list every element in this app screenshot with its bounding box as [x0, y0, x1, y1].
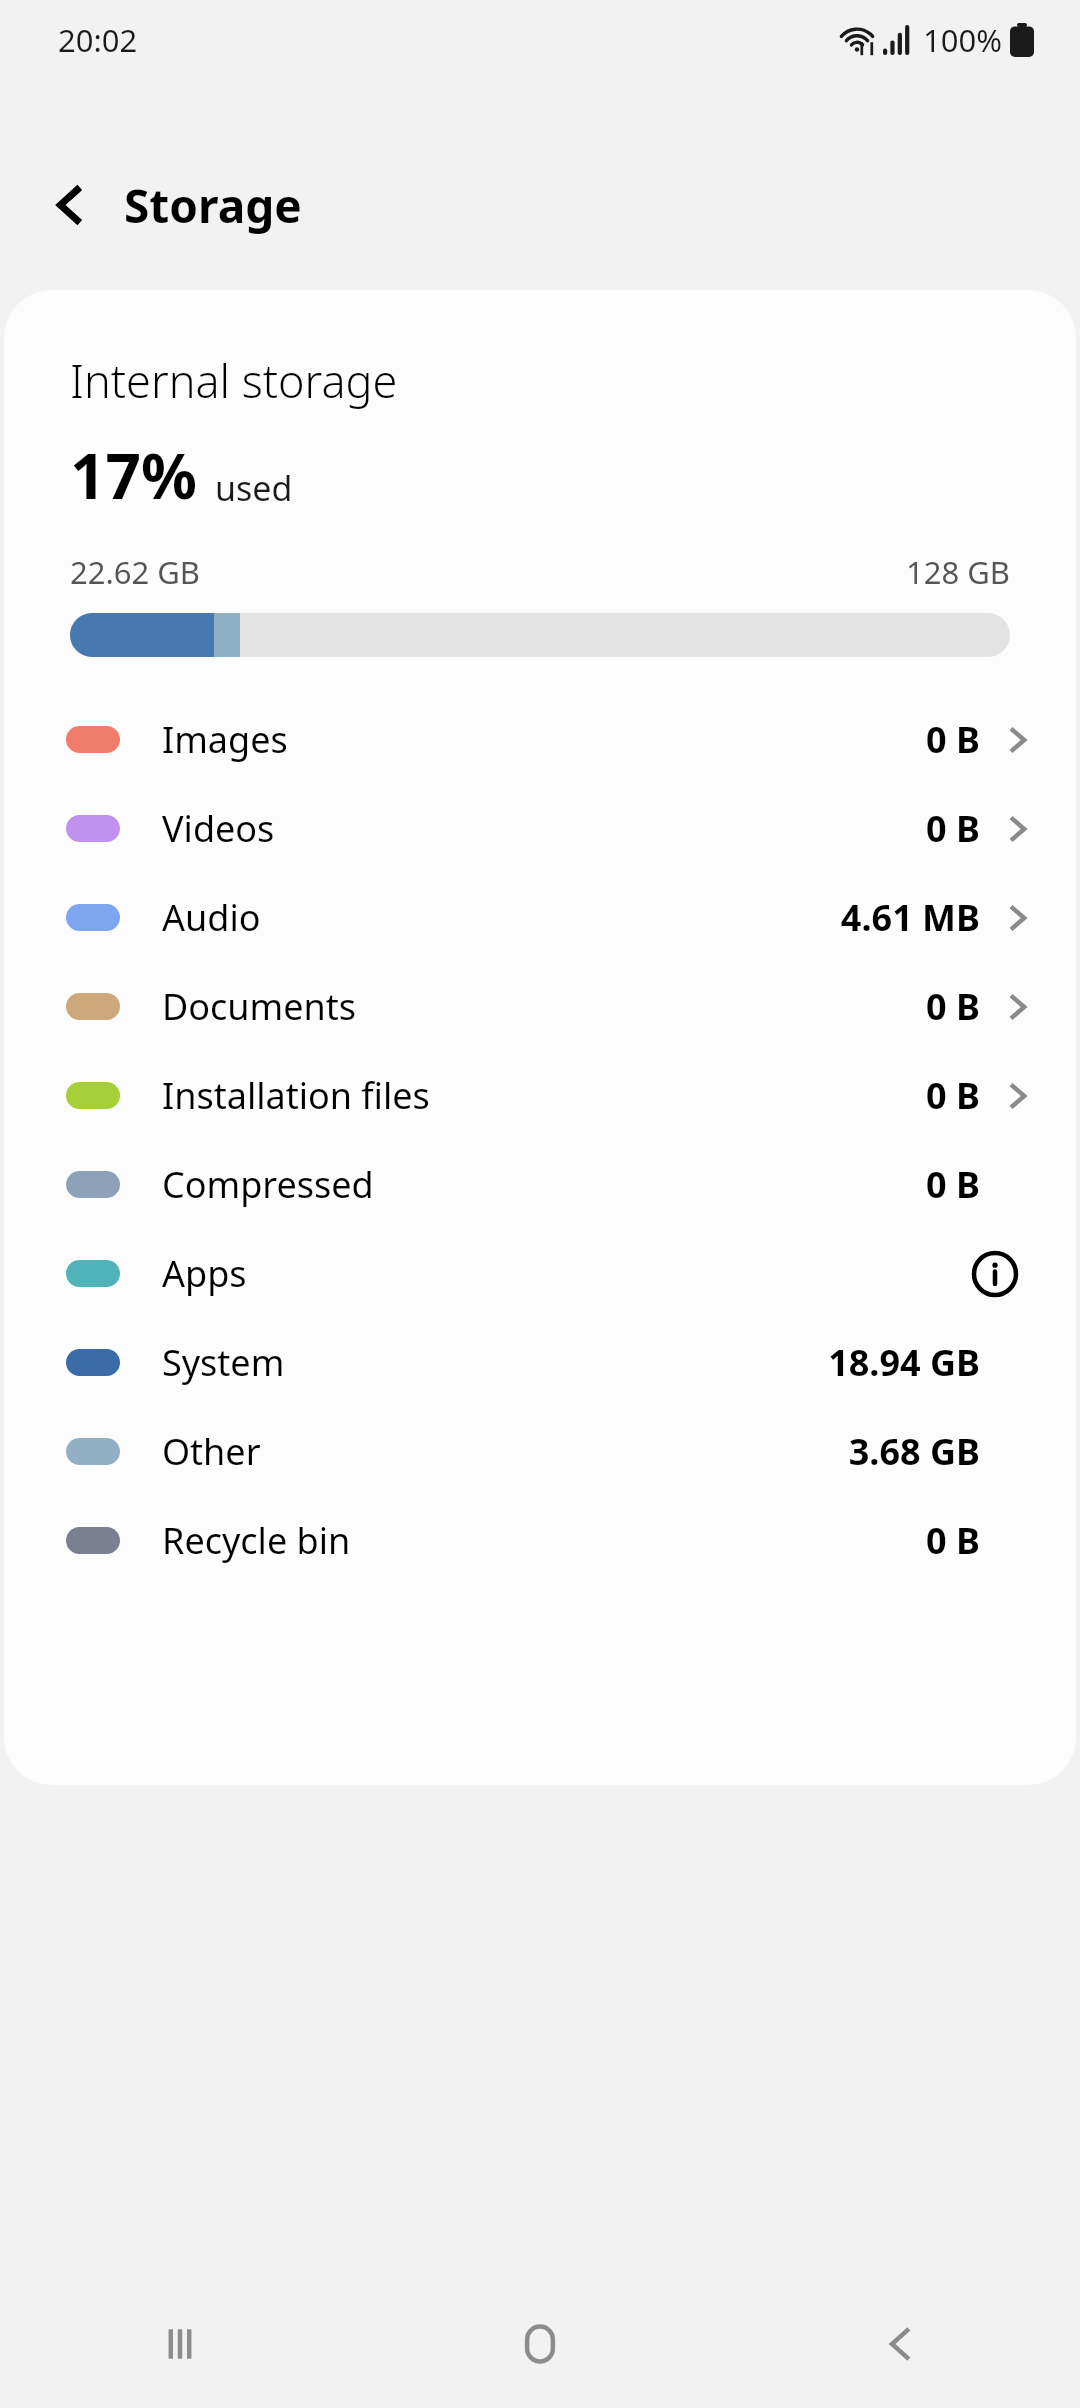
button[interactable]: Installation files: [4, 1051, 1076, 1140]
staticText: 100%: [923, 19, 1002, 61]
button[interactable]: Back: [30, 165, 110, 245]
button[interactable]: Compressed: [4, 1140, 1076, 1229]
button[interactable]: Videos: [4, 784, 1076, 873]
button[interactable]: Apps info: [958, 1237, 1032, 1311]
button[interactable]: Other: [4, 1407, 1076, 1496]
staticText: Internal storage: [70, 350, 398, 411]
staticText: 20:02: [58, 19, 138, 61]
button[interactable]: Apps: [4, 1229, 1076, 1318]
staticText: 128 GB: [906, 551, 1010, 593]
button[interactable]: Documents: [4, 962, 1076, 1051]
staticText: Other: [162, 1427, 261, 1476]
staticText: Audio: [162, 893, 261, 942]
button[interactable]: Audio: [4, 873, 1076, 962]
button[interactable]: Images: [4, 695, 1076, 784]
staticText: used: [215, 465, 293, 511]
staticText: System: [162, 1338, 285, 1387]
staticText: 17%: [70, 433, 197, 517]
staticText: 0 B: [926, 1071, 980, 1120]
staticText: 0 B: [926, 1516, 980, 1565]
staticText: 0 B: [926, 1160, 980, 1209]
button[interactable]: Recycle bin: [4, 1496, 1076, 1585]
staticText: 0 B: [926, 715, 980, 764]
button[interactable]: System: [4, 1318, 1076, 1407]
staticText: Installation files: [162, 1071, 430, 1120]
staticText: Storage: [124, 174, 302, 237]
staticText: Documents: [162, 982, 357, 1031]
staticText: 3.68 GB: [848, 1427, 980, 1476]
staticText: Compressed: [162, 1160, 374, 1209]
staticText: 0 B: [926, 804, 980, 853]
staticText: 4.61 MB: [840, 893, 980, 942]
staticText: Recycle bin: [162, 1516, 351, 1565]
staticText: Apps: [162, 1249, 247, 1298]
button[interactable]: Recents: [0, 2280, 360, 2408]
button[interactable]: Home: [360, 2280, 720, 2408]
staticText: 0 B: [926, 982, 980, 1031]
staticText: Images: [162, 715, 288, 764]
staticText: 22.62 GB: [70, 551, 201, 593]
staticText: Videos: [162, 804, 275, 853]
button[interactable]: Back: [720, 2280, 1080, 2408]
staticText: 18.94 GB: [828, 1338, 980, 1387]
